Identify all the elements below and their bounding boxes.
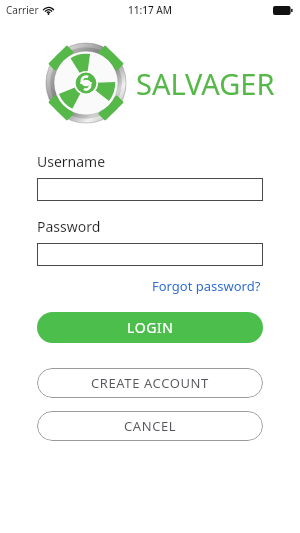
button[interactable]: CREATE ACCOUNT [37, 368, 263, 398]
staticText: 11:17 AM [128, 3, 172, 17]
button[interactable]: CANCEL [37, 411, 263, 441]
button[interactable]: Forgot password? [150, 275, 263, 297]
staticText: CANCEL [124, 417, 177, 435]
button[interactable] [37, 178, 263, 201]
staticText: Forgot password? [152, 277, 261, 295]
staticText: CREATE ACCOUNT [91, 374, 209, 392]
button[interactable] [37, 243, 263, 266]
staticText: LOGIN [127, 318, 174, 337]
button[interactable]: LOGIN [37, 312, 263, 343]
staticText: Password [37, 217, 101, 236]
staticText: SALVAGER [136, 64, 275, 103]
staticText: Carrier [6, 3, 39, 17]
staticText: Username [37, 152, 106, 171]
